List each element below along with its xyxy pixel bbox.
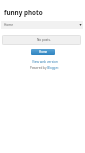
staticText: No posts. [37, 38, 51, 42]
button[interactable]: View web version [32, 60, 58, 64]
staticText: Home [4, 23, 14, 27]
button[interactable]: Powered by Blogger. [30, 66, 59, 70]
button[interactable]: Home [1, 21, 83, 29]
button[interactable]: Home [31, 49, 55, 55]
staticText: funny photo [4, 8, 43, 17]
other: Open page menu [79, 21, 82, 29]
staticText: Home [39, 50, 48, 54]
